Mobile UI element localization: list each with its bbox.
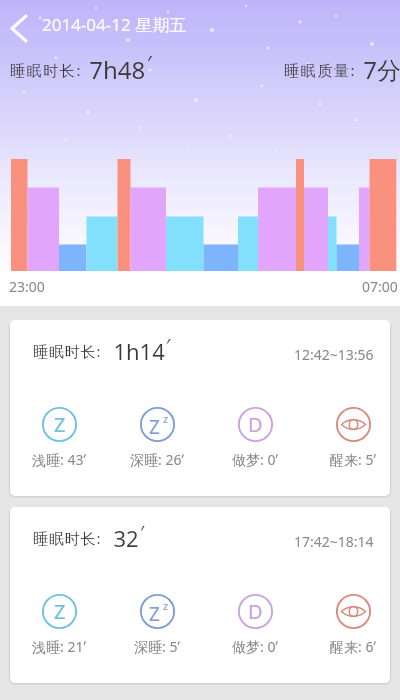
button[interactable]: 睡眠时长: (10, 507, 390, 683)
staticText: 醒来: 5ʹ (330, 450, 376, 469)
staticText: 深睡: 5ʹ (134, 637, 180, 656)
button[interactable]: Z (112, 407, 202, 469)
staticText: 睡眠时长: (33, 528, 102, 548)
button[interactable]: 睡眠时长: (10, 320, 390, 496)
staticText: 浅睡: 21ʹ (32, 637, 86, 656)
staticText: 17:42~18:14 (294, 532, 374, 551)
staticText: 睡眠时长: (10, 60, 83, 80)
button[interactable]: 醒来: 6ʹ (308, 594, 390, 656)
button[interactable]: D (210, 594, 300, 656)
staticText: z (163, 598, 169, 613)
staticText: D (248, 598, 263, 625)
button[interactable]: Back (0, 3, 44, 47)
staticText: 做梦: 0ʹ (232, 637, 278, 656)
staticText: Z (54, 598, 66, 625)
staticText: 23:00 (9, 277, 45, 296)
staticText: 睡眠时长: (33, 341, 102, 361)
staticText: 2014-04-12 星期五 (42, 13, 187, 36)
staticText: 7h48 (83, 53, 146, 86)
staticText: 睡眠质量: (284, 60, 357, 80)
staticText: ′ (166, 333, 171, 358)
staticText: D (248, 411, 263, 438)
staticText: z (163, 411, 169, 426)
staticText: 醒来: 6ʹ (330, 637, 376, 656)
staticText: Z (149, 414, 160, 440)
button[interactable]: Z (112, 594, 202, 656)
staticText: 07:00 (362, 277, 398, 296)
staticText: 1h14 (102, 336, 165, 366)
staticText: 做梦: 0ʹ (232, 450, 278, 469)
button[interactable]: 醒来: 5ʹ (308, 407, 390, 469)
staticText: 深睡: 26ʹ (130, 450, 184, 469)
button[interactable]: Z (14, 594, 104, 656)
staticText: ′ (147, 49, 152, 76)
button[interactable]: Z (14, 407, 104, 469)
staticText: 浅睡: 43ʹ (32, 450, 86, 469)
staticText: Z (149, 601, 160, 627)
staticText: 7分 (357, 53, 400, 86)
staticText: 12:42~13:56 (294, 345, 374, 364)
staticText: ′ (140, 520, 145, 545)
staticText: 32 (102, 523, 139, 553)
staticText: Z (54, 411, 66, 438)
button[interactable]: D (210, 407, 300, 469)
